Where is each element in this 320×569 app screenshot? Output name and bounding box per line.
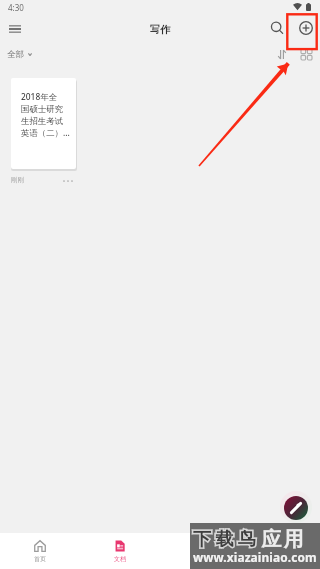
staticText: 文档 [114, 555, 126, 563]
staticText: 4:30 [8, 2, 24, 13]
button[interactable]: 首页 [0, 533, 80, 569]
button[interactable]: Menu [2, 18, 28, 40]
staticText: 刚刚 [11, 176, 24, 184]
staticText: 首页 [34, 555, 46, 563]
staticText: www.xiazainiao.com [193, 549, 317, 565]
staticText: 应用 [260, 527, 305, 552]
staticText: 下载鸟 [193, 528, 261, 551]
staticText: 写作 [150, 23, 170, 36]
button[interactable]: Search [266, 17, 288, 39]
button[interactable]: 2018年全 国硕士研究 生招生考试 英语（二）… [11, 78, 76, 169]
button[interactable]: Add [295, 17, 317, 39]
staticText: 全部 [7, 49, 24, 60]
button[interactable]: 全部 [7, 47, 32, 61]
button[interactable]: New document [284, 496, 308, 520]
button[interactable]: More options [60, 173, 76, 189]
button[interactable]: Sort [272, 45, 292, 64]
button[interactable]: Grid view [296, 44, 316, 65]
staticText: 下载鸟 [193, 528, 261, 551]
staticText: 2018年全 国硕士研究 生招生考试 英语（二）… [21, 91, 71, 139]
button[interactable]: 文档 [80, 533, 160, 569]
